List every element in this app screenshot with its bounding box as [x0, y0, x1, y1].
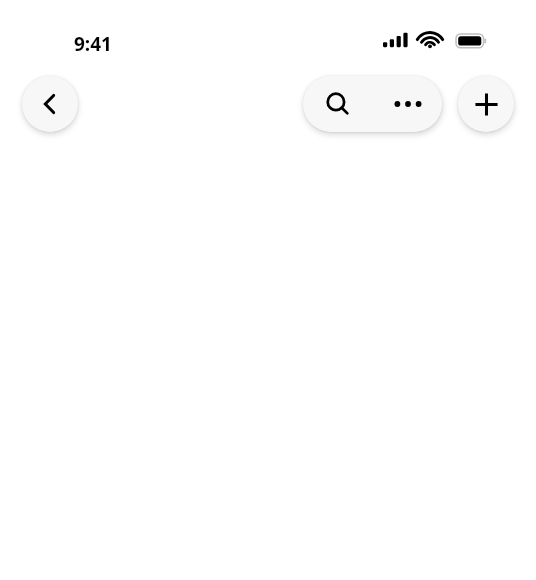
- button[interactable]: Search: [303, 76, 373, 132]
- button[interactable]: More options: [373, 76, 442, 132]
- button[interactable]: Back: [22, 76, 78, 132]
- button[interactable]: Add: [458, 76, 514, 132]
- staticText: 9:41: [74, 31, 112, 57]
